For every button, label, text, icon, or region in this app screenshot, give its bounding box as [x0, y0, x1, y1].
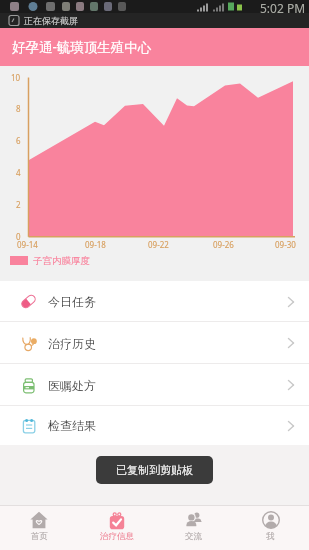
button[interactable]: 首页 [0, 506, 78, 550]
staticText: 2 [16, 199, 21, 210]
staticText: 我 [266, 531, 275, 542]
button[interactable]: 治疗历史 [0, 322, 309, 364]
staticText: 0 [16, 231, 21, 242]
button[interactable]: 医嘱处方 [0, 364, 309, 406]
staticText: 交流 [185, 531, 202, 542]
staticText: 检查结果 [48, 418, 96, 433]
staticText: 10 [11, 72, 21, 83]
button[interactable]: 治疗信息 [78, 506, 155, 550]
staticText: 好孕通-毓璜顶生殖中心 [12, 38, 152, 56]
staticText: 4 [16, 167, 21, 178]
staticText: 子宫内膜厚度 [33, 255, 90, 267]
staticText: 今日任务 [48, 294, 96, 309]
staticText: 医嘱处方 [48, 378, 96, 393]
staticText: 5:02 PM [260, 0, 306, 13]
staticText: 已复制到剪贴板 [116, 463, 193, 477]
button[interactable]: 检查结果 [0, 406, 309, 445]
staticText: 6 [16, 135, 21, 146]
staticText: 首页 [31, 531, 48, 542]
staticText: 09-18 [85, 239, 106, 250]
staticText: 正在保存截屏 [24, 15, 78, 26]
staticText: 09-26 [213, 239, 234, 250]
staticText: 治疗历史 [48, 336, 96, 351]
staticText: 09-22 [148, 239, 169, 250]
staticText: 8 [16, 103, 21, 114]
staticText: 治疗信息 [100, 531, 134, 542]
button[interactable]: 今日任务 [0, 281, 309, 322]
button[interactable]: 交流 [155, 506, 232, 550]
button[interactable]: 我 [232, 506, 309, 550]
staticText: 09-14 [17, 239, 38, 250]
staticText: 09-30 [275, 239, 296, 250]
